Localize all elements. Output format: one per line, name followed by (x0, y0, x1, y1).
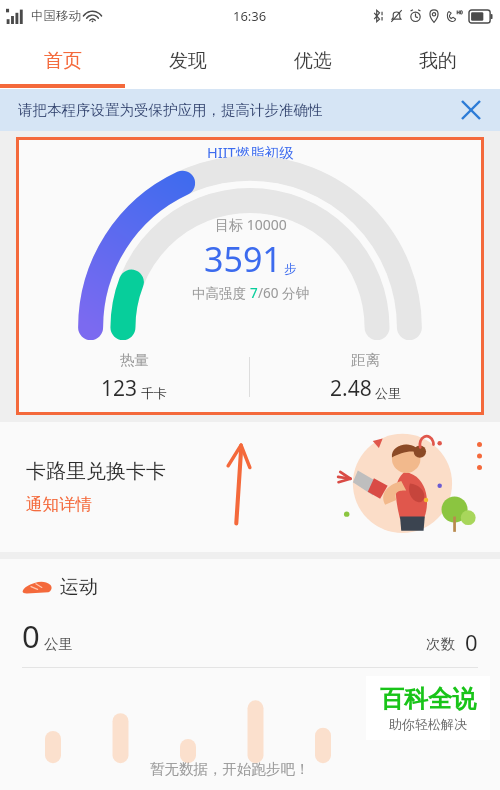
button[interactable]: 热量 (19, 351, 249, 403)
staticText: 中国移动 (31, 8, 81, 24)
staticText: 卡路里兑换卡卡 (26, 459, 166, 484)
staticText: 次数 (426, 635, 455, 653)
staticText: 通知详情 (26, 494, 92, 515)
staticText: 123 (101, 374, 138, 403)
staticText: 热量 (120, 351, 149, 369)
button[interactable]: 发现 (125, 32, 250, 89)
staticText: 请把本程序设置为受保护应用，提高计步准确性 (18, 101, 323, 119)
staticText: 我的 (419, 49, 457, 73)
staticText: 步 (284, 261, 297, 277)
staticText: 百科全说 (380, 684, 476, 714)
staticText: 首页 (44, 49, 82, 73)
staticText: 优选 (294, 49, 332, 73)
staticText: 千卡 (141, 385, 167, 401)
button[interactable]: 百科全说 (380, 684, 476, 732)
staticText: 助你轻松解决 (389, 716, 467, 732)
staticText: 公里 (44, 635, 73, 653)
staticText: 中高强度 (192, 284, 250, 302)
button[interactable]: Close banner (456, 95, 486, 125)
staticText: 发现 (169, 49, 207, 73)
staticText: 0 (22, 615, 40, 657)
staticText: 运动 (60, 575, 98, 599)
staticText: 3591 (204, 236, 282, 282)
staticText: 距离 (351, 351, 380, 369)
button[interactable]: HIIT燃脂初级 (19, 140, 481, 412)
button[interactable]: More options (466, 436, 492, 476)
button[interactable]: 卡路里兑换卡卡 (0, 422, 500, 552)
button[interactable]: 距离 (250, 351, 481, 403)
button[interactable]: 运动 (0, 559, 500, 790)
staticText: 目标 10000 (215, 215, 287, 234)
staticText: 0 (465, 627, 478, 657)
button[interactable]: 优选 (250, 32, 375, 89)
button[interactable]: 我的 (375, 32, 500, 89)
staticText: 暂无数据，开始跑步吧！ (150, 760, 310, 778)
staticText: 公里 (375, 385, 401, 401)
staticText: 2.48 (330, 374, 372, 403)
staticText: /60 分钟 (258, 284, 309, 302)
staticText: 16:36 (233, 7, 267, 25)
staticText: HIIT燃脂初级 (207, 142, 294, 162)
staticText: 7 (250, 284, 258, 302)
button[interactable]: 首页 (0, 32, 125, 89)
